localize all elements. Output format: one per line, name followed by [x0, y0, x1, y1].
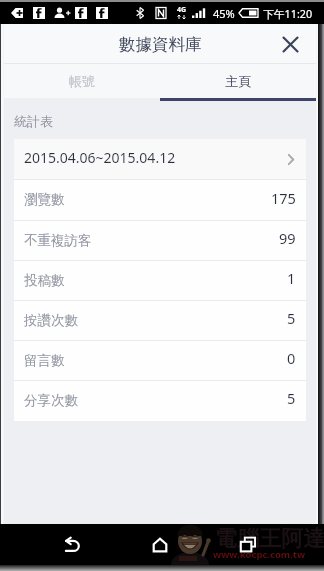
staticText: 留言數	[24, 352, 65, 369]
button[interactable]: 留言數	[14, 341, 306, 381]
button[interactable]: Recent apps	[224, 524, 272, 565]
staticText: 0	[287, 348, 296, 368]
button[interactable]: 按讚次數	[14, 301, 306, 341]
staticText: 4G	[177, 5, 187, 15]
staticText: 按讚次數	[24, 312, 78, 329]
staticText: 1	[287, 268, 296, 288]
button[interactable]: 投稿數	[14, 261, 306, 301]
staticText: www.kocpc.com.tw	[213, 548, 306, 561]
staticText: 175	[271, 188, 296, 208]
staticText: 5	[287, 388, 296, 408]
staticText: 投稿數	[24, 272, 65, 289]
button[interactable]: Close	[271, 24, 309, 64]
button[interactable]: 帳號	[4, 64, 160, 101]
button[interactable]: 不重複訪客	[14, 221, 306, 261]
staticText: 分享次數	[24, 392, 78, 409]
staticText: 數據資料庫	[119, 34, 202, 55]
staticText: 2015.04.06~2015.04.12	[24, 148, 176, 167]
staticText: 45%	[213, 6, 235, 21]
button[interactable]: 主頁	[160, 64, 316, 101]
staticText: 電腦王阿達	[215, 525, 324, 553]
staticText: 99	[279, 228, 296, 248]
staticText: 瀏覽數	[24, 191, 65, 208]
staticText: 統計表	[14, 113, 53, 129]
staticText: 帳號	[69, 73, 95, 89]
staticText: 主頁	[225, 73, 251, 89]
staticText: 不重複訪客	[24, 232, 92, 249]
button[interactable]: 分享次數	[14, 381, 306, 421]
button[interactable]: 瀏覽數	[14, 180, 306, 221]
button[interactable]: Home	[136, 524, 184, 565]
staticText: 下午11:20	[263, 6, 313, 21]
button[interactable]: Back	[48, 524, 96, 565]
staticText: 5	[287, 308, 296, 328]
button[interactable]: 2015.04.06~2015.04.12	[14, 139, 306, 180]
